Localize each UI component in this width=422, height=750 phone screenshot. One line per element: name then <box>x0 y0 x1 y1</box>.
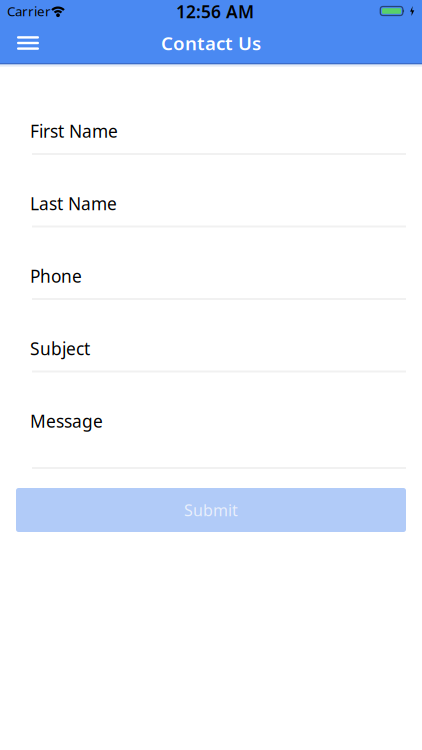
button[interactable]: Phone <box>0 265 422 300</box>
button[interactable]: Last Name <box>0 192 422 227</box>
staticText: First Name <box>30 119 118 142</box>
staticText: Message <box>30 409 103 432</box>
button[interactable]: First Name <box>0 120 422 155</box>
staticText: Contact Us <box>161 31 261 55</box>
button[interactable]: Submit <box>16 488 406 532</box>
staticText: 12:56 AM <box>176 0 254 23</box>
staticText: Submit <box>184 499 238 521</box>
button[interactable]: Subject <box>0 337 422 372</box>
button[interactable]: Message <box>0 410 422 469</box>
staticText: Subject <box>30 337 90 360</box>
staticText: Carrier <box>7 2 51 20</box>
staticText: Phone <box>30 264 82 287</box>
button[interactable]: Menu <box>6 23 50 63</box>
staticText: Last Name <box>30 192 117 215</box>
